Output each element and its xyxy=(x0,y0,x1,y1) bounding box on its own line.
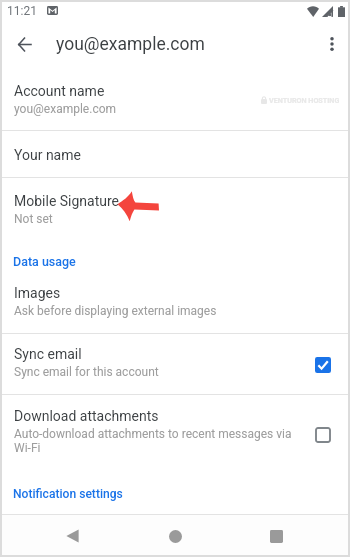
staticText: 11:21 xyxy=(7,4,37,18)
button[interactable]: Sync email, enabled xyxy=(305,347,341,383)
staticText: Mobile Signature xyxy=(14,193,120,209)
button[interactable]: Home xyxy=(156,517,194,555)
staticText: you@example.com xyxy=(14,102,117,116)
button[interactable]: Account name xyxy=(2,68,348,130)
staticText: Auto-download attachments to recent mess… xyxy=(14,427,305,455)
button[interactable]: Your name xyxy=(2,131,348,177)
staticText: you@example.com xyxy=(56,34,205,55)
staticText: Account name xyxy=(14,83,105,99)
button[interactable]: Images xyxy=(2,279,348,333)
button[interactable]: Sync email xyxy=(2,334,348,394)
button[interactable]: Download attachments xyxy=(2,395,348,474)
button[interactable]: Data usage xyxy=(2,250,348,276)
staticText: Not set xyxy=(14,212,53,226)
staticText: Sync email xyxy=(14,346,82,362)
staticText: Images xyxy=(14,285,61,301)
button[interactable]: Notification settings xyxy=(2,480,348,514)
staticText: Your name xyxy=(14,147,81,163)
button[interactable]: Recent apps xyxy=(257,517,295,555)
button[interactable]: More options xyxy=(316,28,348,60)
staticText: Sync email for this account xyxy=(14,365,159,379)
staticText: Ask before displaying external images xyxy=(14,304,217,318)
button[interactable]: Navigate up xyxy=(8,28,40,60)
staticText: Notification settings xyxy=(13,487,123,501)
staticText: Data usage xyxy=(13,254,76,269)
button[interactable]: Mobile Signature xyxy=(2,178,348,243)
staticText: Download attachments xyxy=(14,408,159,424)
button[interactable]: Download attachments, disabled xyxy=(305,417,341,453)
staticText: VENTURON HOSTING xyxy=(269,96,340,104)
button[interactable]: Back xyxy=(53,517,91,555)
